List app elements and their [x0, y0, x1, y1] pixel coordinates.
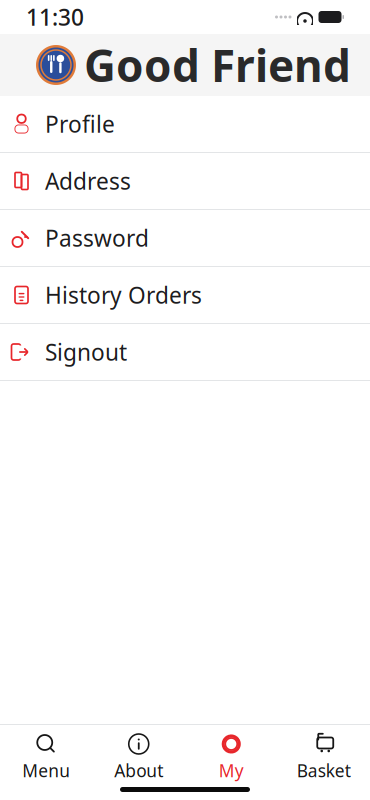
- staticText: 11:30: [26, 2, 84, 32]
- staticText: Password: [45, 223, 149, 253]
- button[interactable]: Signout: [0, 324, 370, 381]
- staticText: History Orders: [45, 280, 202, 310]
- button[interactable]: Profile: [0, 96, 370, 153]
- staticText: Menu: [22, 759, 70, 782]
- staticText: Signout: [45, 337, 127, 367]
- staticText: Basket: [297, 759, 351, 782]
- button[interactable]: Menu: [0, 724, 92, 782]
- button[interactable]: Address: [0, 153, 370, 210]
- staticText: Profile: [45, 109, 115, 139]
- staticText: Address: [45, 166, 131, 196]
- button[interactable]: History Orders: [0, 267, 370, 324]
- staticText: My: [219, 759, 244, 782]
- button[interactable]: About: [92, 724, 185, 782]
- staticText: Good Friend: [84, 36, 351, 94]
- staticText: About: [114, 759, 163, 782]
- button[interactable]: Password: [0, 210, 370, 267]
- button[interactable]: My: [185, 724, 277, 782]
- button[interactable]: Basket: [277, 724, 370, 782]
